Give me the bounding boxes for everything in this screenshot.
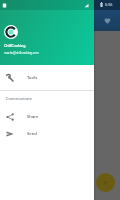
button[interactable]: Share (0, 108, 94, 125)
staticText: ChillCooking (4, 43, 26, 48)
button[interactable]: Favorite (103, 16, 112, 25)
button[interactable]: Send (0, 125, 94, 142)
staticText: Communicate (6, 96, 33, 101)
staticText: Tools (27, 75, 38, 81)
staticText: 6:56 (105, 2, 113, 7)
button[interactable]: Tools (0, 69, 94, 86)
staticText: Send (27, 131, 37, 137)
staticText: Share (27, 114, 39, 120)
button[interactable]: Add recipe (96, 173, 115, 192)
staticText: machu@chillcooking.com (4, 51, 39, 55)
